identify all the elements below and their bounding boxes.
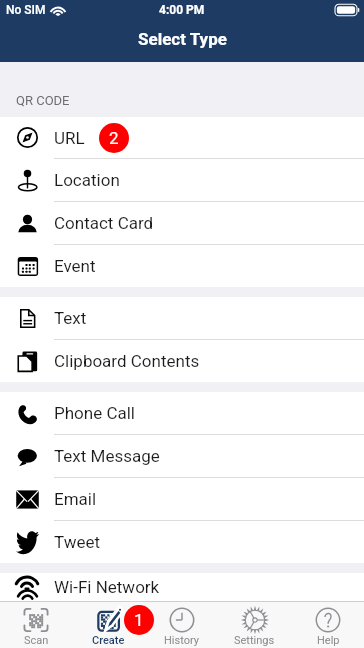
button[interactable]: Location — [0, 159, 364, 201]
button[interactable]: Clipboard Contents — [0, 340, 364, 382]
staticText: URL — [54, 128, 85, 148]
staticText: Tweet — [54, 532, 101, 552]
button[interactable]: Create — [72, 602, 145, 648]
staticText: History — [164, 634, 199, 647]
staticText: Create — [92, 634, 125, 647]
button[interactable]: Text Message — [0, 435, 364, 477]
staticText: 4:00 PM — [159, 3, 205, 17]
staticText: QR CODE — [16, 93, 70, 108]
button[interactable]: Settings — [218, 602, 291, 648]
button[interactable]: History — [145, 602, 218, 648]
staticText: Wi-Fi Network — [54, 577, 160, 597]
staticText: Phone Call — [54, 403, 135, 423]
button[interactable]: Email — [0, 478, 364, 520]
button[interactable]: Help — [291, 602, 364, 648]
button[interactable]: URL — [0, 117, 364, 158]
staticText: Select Type — [138, 29, 227, 49]
staticText: No SIM — [6, 3, 46, 17]
staticText: Clipboard Contents — [54, 351, 200, 371]
staticText: Text Message — [54, 446, 160, 466]
button[interactable]: Text — [0, 297, 364, 339]
staticText: 1 — [134, 610, 144, 630]
staticText: Scan — [24, 634, 49, 647]
staticText: Contact Card — [54, 213, 154, 233]
staticText: Settings — [234, 634, 275, 647]
button[interactable]: Wi-Fi Network — [0, 573, 364, 601]
button[interactable]: Event — [0, 245, 364, 287]
staticText: Event — [54, 256, 96, 276]
staticText: Location — [54, 170, 120, 190]
button[interactable]: Contact Card — [0, 202, 364, 244]
staticText: Help — [317, 634, 340, 647]
staticText: Text — [54, 308, 87, 328]
button[interactable]: Tweet — [0, 521, 364, 563]
staticText: 2 — [109, 128, 119, 148]
staticText: Email — [54, 489, 97, 509]
button[interactable]: Scan — [0, 602, 72, 648]
button[interactable]: Phone Call — [0, 392, 364, 434]
